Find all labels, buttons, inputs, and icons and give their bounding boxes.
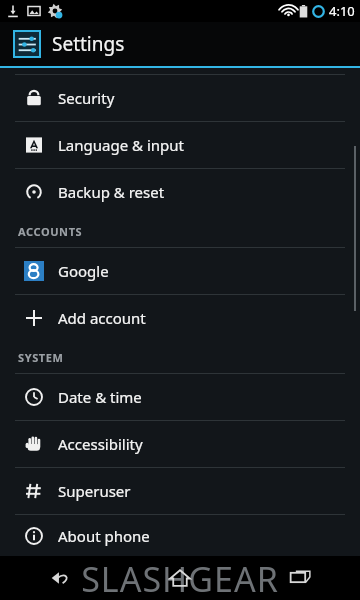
staticText: Backup & reset (58, 182, 165, 202)
staticText: Language & input (58, 135, 184, 155)
staticText: Date & time (58, 387, 142, 407)
staticText: SLASHGEAR (81, 556, 279, 600)
button[interactable]: Accessibility (0, 421, 360, 467)
staticText: Accessibility (58, 434, 143, 454)
button[interactable]: About phone (0, 515, 360, 556)
button[interactable]: Date & time (0, 374, 360, 420)
other: Settings app icon (14, 31, 40, 57)
button[interactable]: Security (0, 75, 360, 121)
button[interactable]: Backup & reset (0, 169, 360, 215)
staticText: Settings (52, 31, 125, 57)
staticText: SYSTEM (18, 350, 64, 365)
staticText: Security (58, 88, 115, 108)
button[interactable]: Back (0, 556, 120, 600)
staticText: About phone (58, 526, 150, 546)
button[interactable]: Home (120, 556, 240, 600)
staticText: Google (58, 261, 109, 281)
button[interactable]: Recent apps (240, 556, 360, 600)
staticText: 4:10 (329, 2, 355, 20)
staticText: Superuser (58, 481, 131, 501)
button[interactable]: Google (0, 248, 360, 294)
button[interactable]: Language & input (0, 122, 360, 168)
button[interactable]: Superuser (0, 468, 360, 514)
staticText: ACCOUNTS (18, 224, 83, 239)
button[interactable]: Add account (0, 295, 360, 341)
staticText: Add account (58, 308, 146, 328)
